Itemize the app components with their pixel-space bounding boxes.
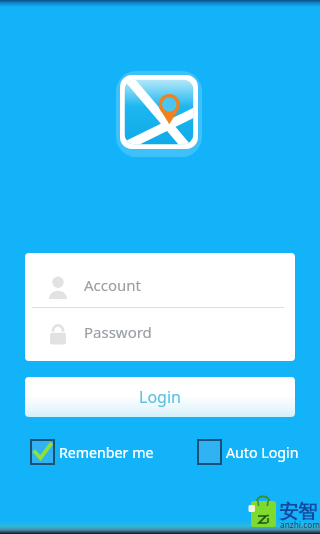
staticText: Login — [139, 386, 181, 408]
staticText: Remenber me — [59, 443, 154, 462]
staticText: Auto Login — [226, 443, 299, 462]
other: anzhi.com — [250, 496, 320, 530]
staticText: 安智 — [279, 500, 317, 524]
staticText: anzhi.com — [280, 519, 320, 530]
button[interactable]: Password — [25, 308, 295, 361]
button[interactable]: Remenber me — [30, 439, 154, 465]
button[interactable]: Login — [25, 377, 295, 417]
staticText: Password — [84, 322, 152, 342]
staticText: Account — [84, 275, 142, 295]
button[interactable]: Account — [25, 253, 295, 308]
button[interactable]: Auto Login — [197, 439, 299, 465]
